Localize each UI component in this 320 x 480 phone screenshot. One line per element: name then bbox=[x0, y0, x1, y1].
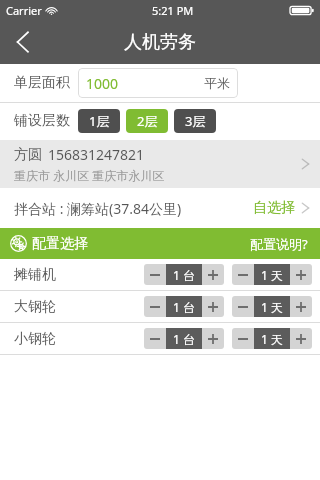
button[interactable]: 1 bbox=[254, 264, 290, 285]
staticText: 2层 bbox=[137, 112, 158, 130]
staticText: 配置说明? bbox=[250, 235, 308, 253]
button[interactable]: Decrease bbox=[144, 296, 166, 317]
staticText: 大钢轮 bbox=[14, 298, 56, 316]
staticText: 平米 bbox=[204, 75, 230, 91]
staticText: 1 bbox=[173, 267, 180, 283]
button[interactable]: 3层 bbox=[174, 109, 216, 133]
staticText: 摊铺机 bbox=[14, 266, 56, 284]
staticText: 1层 bbox=[89, 112, 110, 130]
button[interactable]: 1000 bbox=[78, 68, 238, 98]
staticText: 1 bbox=[173, 331, 180, 347]
staticText: 1000 bbox=[86, 74, 119, 93]
staticText: 台 bbox=[183, 268, 195, 283]
button[interactable]: Increase bbox=[202, 328, 224, 349]
button[interactable]: 1 bbox=[166, 328, 202, 349]
staticText: 1 bbox=[173, 299, 180, 315]
staticText: 方圆 bbox=[14, 146, 42, 164]
button[interactable]: Increase bbox=[290, 264, 312, 285]
button[interactable]: Increase bbox=[202, 296, 224, 317]
staticText: 人机劳务 bbox=[124, 31, 196, 54]
staticText: 重庆市 永川区 重庆市永川区 bbox=[14, 167, 165, 183]
staticText: Carrier bbox=[6, 3, 42, 18]
button[interactable]: 1 bbox=[254, 296, 290, 317]
staticText: 5:21 PM bbox=[152, 3, 194, 18]
staticText: 单层面积 bbox=[14, 74, 70, 92]
button[interactable]: Increase bbox=[290, 328, 312, 349]
button[interactable]: Increase bbox=[290, 296, 312, 317]
staticText: 台 bbox=[183, 332, 195, 347]
staticText: 3层 bbox=[185, 112, 206, 130]
staticText: 156831247821 bbox=[48, 145, 145, 164]
staticText: 小钢轮 bbox=[14, 330, 56, 348]
staticText: 1 bbox=[261, 299, 268, 315]
staticText: 配置选择 bbox=[32, 235, 88, 253]
button[interactable]: Increase bbox=[202, 264, 224, 285]
button[interactable]: 拌合站 : 澜筹站(37.84公里) bbox=[0, 188, 320, 228]
button[interactable]: Decrease bbox=[144, 264, 166, 285]
button[interactable]: Decrease bbox=[232, 296, 254, 317]
button[interactable]: Decrease bbox=[144, 328, 166, 349]
staticText: 拌合站 : 澜筹站(37.84公里) bbox=[14, 199, 182, 218]
staticText: 1 bbox=[261, 331, 268, 347]
staticText: 1 bbox=[261, 267, 268, 283]
staticText: 天 bbox=[271, 332, 283, 347]
button[interactable]: Back bbox=[0, 20, 44, 64]
button[interactable]: 配置说明? bbox=[248, 231, 310, 257]
button[interactable]: 1 bbox=[166, 264, 202, 285]
button[interactable]: Decrease bbox=[232, 264, 254, 285]
staticText: 台 bbox=[183, 300, 195, 315]
staticText: 天 bbox=[271, 268, 283, 283]
staticText: 自选择 bbox=[253, 199, 295, 217]
staticText: 铺设层数 bbox=[14, 112, 70, 130]
button[interactable]: 1层 bbox=[78, 109, 120, 133]
button[interactable]: 1 bbox=[254, 328, 290, 349]
button[interactable]: Decrease bbox=[232, 328, 254, 349]
button[interactable]: 1 bbox=[166, 296, 202, 317]
button[interactable]: 2层 bbox=[126, 109, 168, 133]
button[interactable]: 方圆 bbox=[0, 140, 320, 188]
staticText: 天 bbox=[271, 300, 283, 315]
